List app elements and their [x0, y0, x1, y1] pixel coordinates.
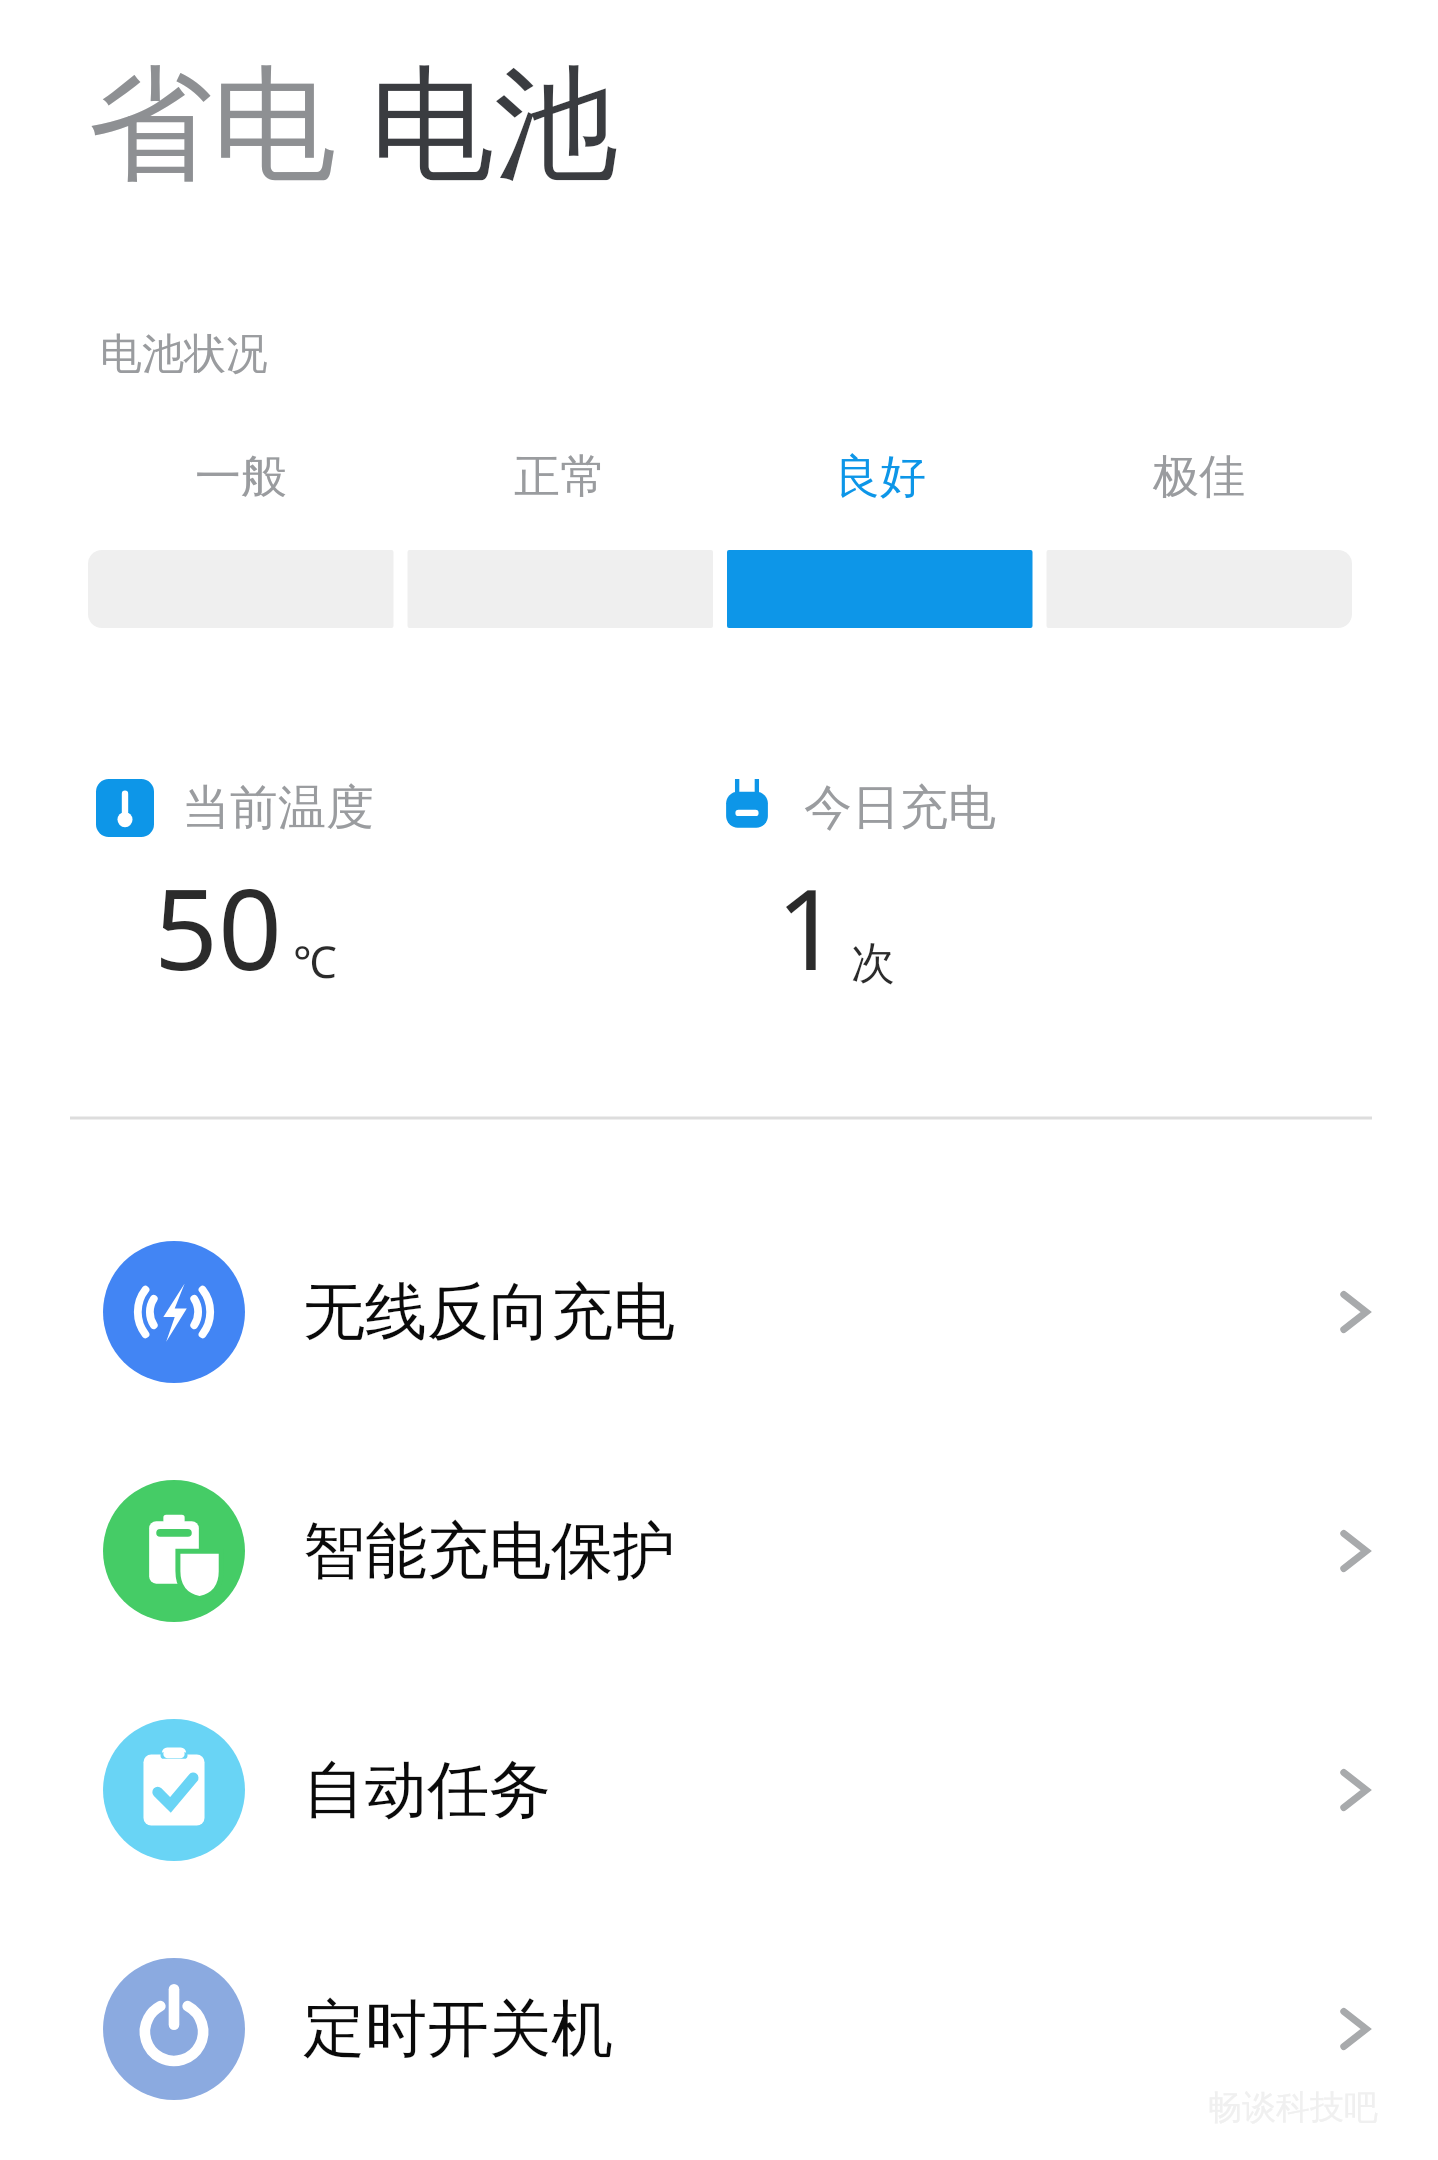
button[interactable]: 一般 [131, 448, 351, 506]
staticText: 50 [154, 850, 283, 1003]
button[interactable]: 省电 [88, 48, 336, 204]
staticText: 今日充电 [804, 778, 996, 838]
button[interactable]: 定时开关机 [0, 1911, 1438, 2147]
staticText: 1 [776, 850, 841, 1003]
staticText: 当前温度 [182, 778, 374, 838]
staticText: ℃ [293, 931, 337, 991]
staticText: 极佳 [1089, 448, 1309, 506]
staticText: 畅谈科技吧 [1208, 2086, 1378, 2129]
button[interactable]: 智能充电保护 [0, 1433, 1438, 1669]
staticText: 自动任务 [303, 1751, 551, 1829]
staticText: 电池状况 [100, 328, 268, 381]
button[interactable]: 良好 [770, 448, 990, 506]
button[interactable]: 电池 [370, 48, 618, 204]
staticText: 一般 [131, 448, 351, 506]
button[interactable]: 自动任务 [0, 1672, 1438, 1908]
staticText: 智能充电保护 [303, 1512, 675, 1590]
staticText: 次 [851, 936, 895, 991]
staticText: 定时开关机 [303, 1990, 613, 2068]
staticText: 良好 [770, 448, 990, 506]
button[interactable]: 极佳 [1089, 448, 1309, 506]
staticText: 无线反向充电 [303, 1273, 675, 1351]
staticText: 省电 [88, 48, 336, 204]
button[interactable]: 无线反向充电 [0, 1194, 1438, 1430]
button[interactable]: 正常 [450, 448, 670, 506]
staticText: 电池 [370, 48, 618, 204]
staticText: 正常 [450, 448, 670, 506]
